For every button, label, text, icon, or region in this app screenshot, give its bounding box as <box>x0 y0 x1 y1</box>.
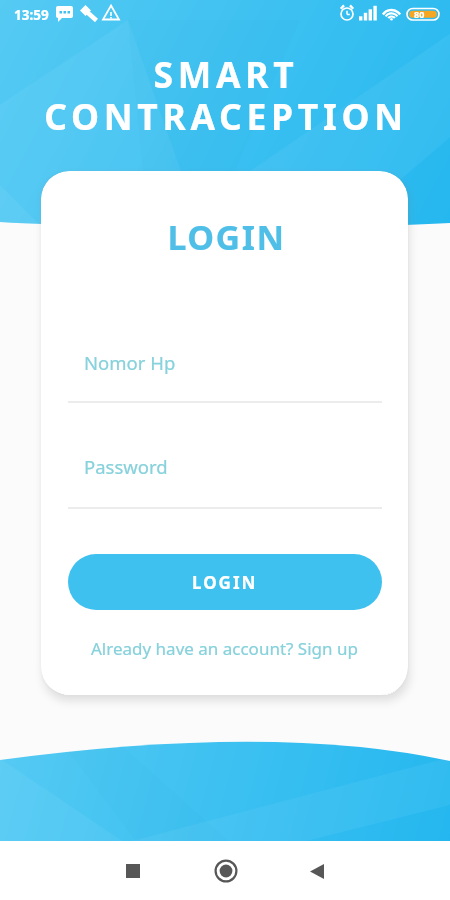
staticText: Nomor Hp <box>84 350 176 375</box>
button[interactable]: Home <box>197 843 254 899</box>
staticText: LOGIN <box>192 571 258 594</box>
button[interactable]: Recent apps <box>104 843 161 899</box>
staticText: SMART <box>1 50 450 98</box>
button[interactable]: LOGIN <box>68 554 382 610</box>
staticText: 13:59 <box>14 6 49 24</box>
button[interactable]: Back <box>288 843 345 899</box>
staticText: Already have an account? Sign up <box>91 637 358 660</box>
staticText: 80 <box>414 8 425 20</box>
staticText: CONTRACEPTION <box>1 92 450 140</box>
staticText: LOGIN <box>43 214 408 260</box>
staticText: Password <box>84 454 168 479</box>
button[interactable]: Already have an account? Sign up <box>41 634 408 662</box>
